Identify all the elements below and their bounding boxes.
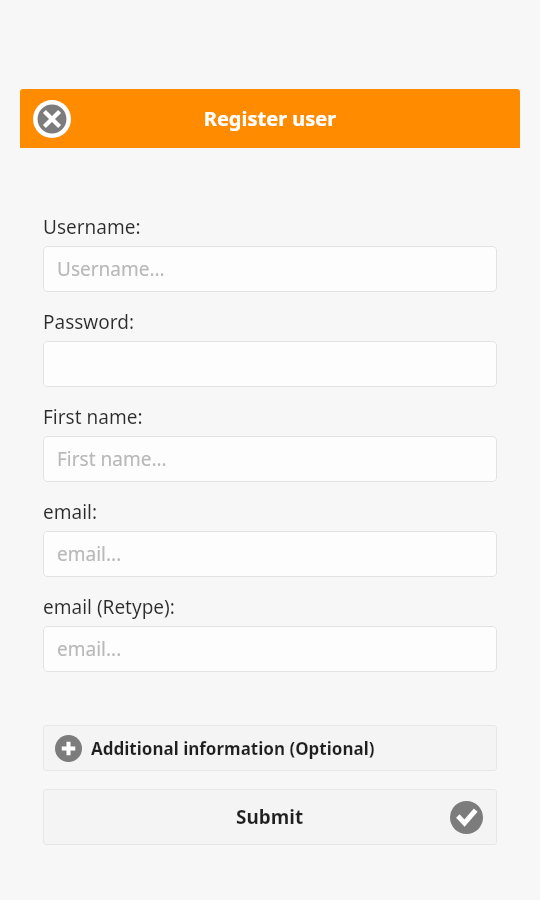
button[interactable]: First name... <box>43 436 497 482</box>
staticText: First name... <box>57 446 167 472</box>
button[interactable]: email... <box>43 626 497 672</box>
button[interactable]: Submit <box>43 789 497 845</box>
staticText: Submit <box>236 804 304 830</box>
button[interactable] <box>43 341 497 387</box>
staticText: Register user <box>20 105 520 132</box>
staticText: email... <box>57 636 122 662</box>
button[interactable]: email... <box>43 531 497 577</box>
staticText: email (Retype): <box>43 594 175 620</box>
button[interactable]: Close <box>30 97 74 141</box>
staticText: email... <box>57 541 122 567</box>
staticText: email: <box>43 499 98 525</box>
staticText: Username: <box>43 214 141 240</box>
staticText: Additional information (Optional) <box>91 737 375 760</box>
staticText: Username... <box>57 256 165 282</box>
staticText: First name: <box>43 404 143 430</box>
button[interactable]: Additional information (Optional) <box>43 725 497 771</box>
button[interactable]: Username... <box>43 246 497 292</box>
staticText: Password: <box>43 309 135 335</box>
